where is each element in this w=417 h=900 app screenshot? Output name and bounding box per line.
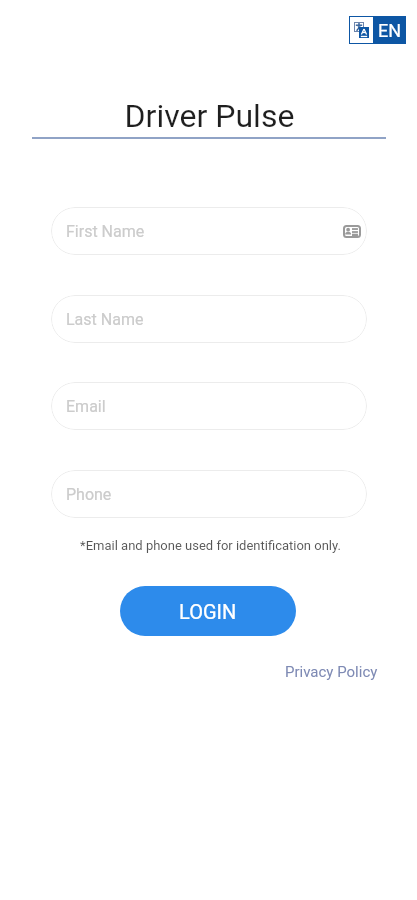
button[interactable]: First Name — [51, 207, 367, 255]
staticText: First Name — [66, 222, 145, 241]
staticText: Driver Pulse — [1, 97, 417, 135]
button[interactable]: LOGIN — [120, 586, 296, 636]
staticText: *Email and phone used for identification… — [2, 538, 417, 553]
staticText: LOGIN — [179, 600, 237, 623]
button[interactable]: Phone — [51, 470, 367, 518]
button[interactable]: Change language — [349, 16, 406, 44]
button[interactable]: Email — [51, 382, 367, 430]
button[interactable]: Last Name — [51, 295, 367, 343]
button[interactable]: Privacy Policy — [285, 663, 378, 681]
staticText: Email — [66, 397, 106, 416]
staticText: Last Name — [66, 310, 144, 329]
staticText: EN — [378, 20, 402, 41]
staticText: Phone — [66, 485, 112, 504]
